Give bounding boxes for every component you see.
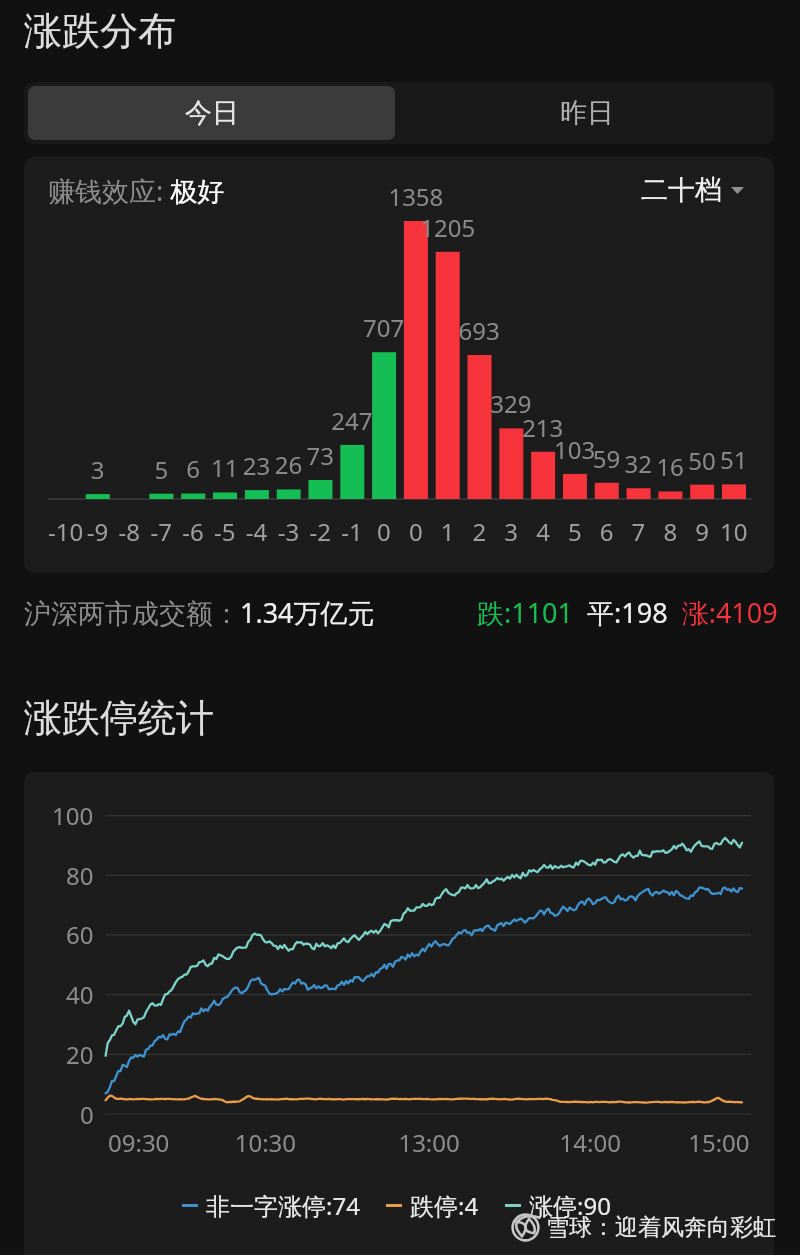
staticText: 昨日 [560, 96, 614, 130]
button[interactable]: 跌停:4 [386, 1189, 479, 1222]
staticText: 赚钱效应: 极好 [48, 172, 225, 209]
staticText: 二十档 [641, 173, 722, 207]
button[interactable]: 昨日 [399, 82, 774, 144]
staticText: 非一字涨停:74 [206, 1189, 360, 1222]
button[interactable]: 涨停:90 [505, 1189, 611, 1222]
staticText: 沪深两市成交额：1.34万亿元 [24, 594, 375, 631]
button[interactable]: 今日 [28, 86, 395, 140]
staticText: 雪球：迎着风奔向彩虹 [546, 1213, 776, 1242]
staticText: 跌停:4 [410, 1189, 479, 1222]
staticText: 今日 [185, 96, 239, 130]
staticText: 跌:1101 平:198 涨:4109 [477, 594, 778, 631]
staticText: 涨停:90 [529, 1189, 611, 1222]
button[interactable]: 雪球水印 [510, 1212, 776, 1243]
staticText: 涨跌停统计 [24, 694, 214, 742]
button[interactable]: 选择档位：二十档 [639, 171, 746, 209]
button[interactable]: 非一字涨停:74 [182, 1189, 360, 1222]
staticText: 涨跌分布 [24, 7, 176, 55]
